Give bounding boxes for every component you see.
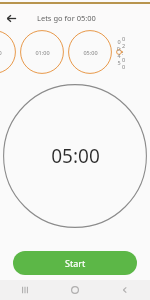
button[interactable]: 05:00 — [3, 84, 147, 228]
button[interactable]: Home — [50, 280, 100, 300]
staticText: 03:00 — [0, 49, 2, 56]
staticText: Lets go for 05:00 — [37, 13, 96, 23]
button[interactable]: 00:45 — [116, 30, 122, 74]
staticText: 00:45 — [116, 38, 122, 66]
button[interactable]: Back — [100, 280, 150, 300]
button[interactable]: 01:00 — [20, 30, 64, 74]
button[interactable]: Start — [13, 251, 137, 275]
button[interactable]: Back — [0, 7, 22, 29]
staticText: Start — [65, 257, 86, 269]
button[interactable]: 03:00 — [0, 30, 16, 74]
staticText: 01:00 — [35, 49, 50, 56]
staticText: 05:00 — [51, 143, 100, 169]
button[interactable]: Recent apps — [0, 280, 50, 300]
button[interactable]: 05:00 — [68, 30, 112, 74]
staticText: 05:00 — [83, 49, 98, 56]
